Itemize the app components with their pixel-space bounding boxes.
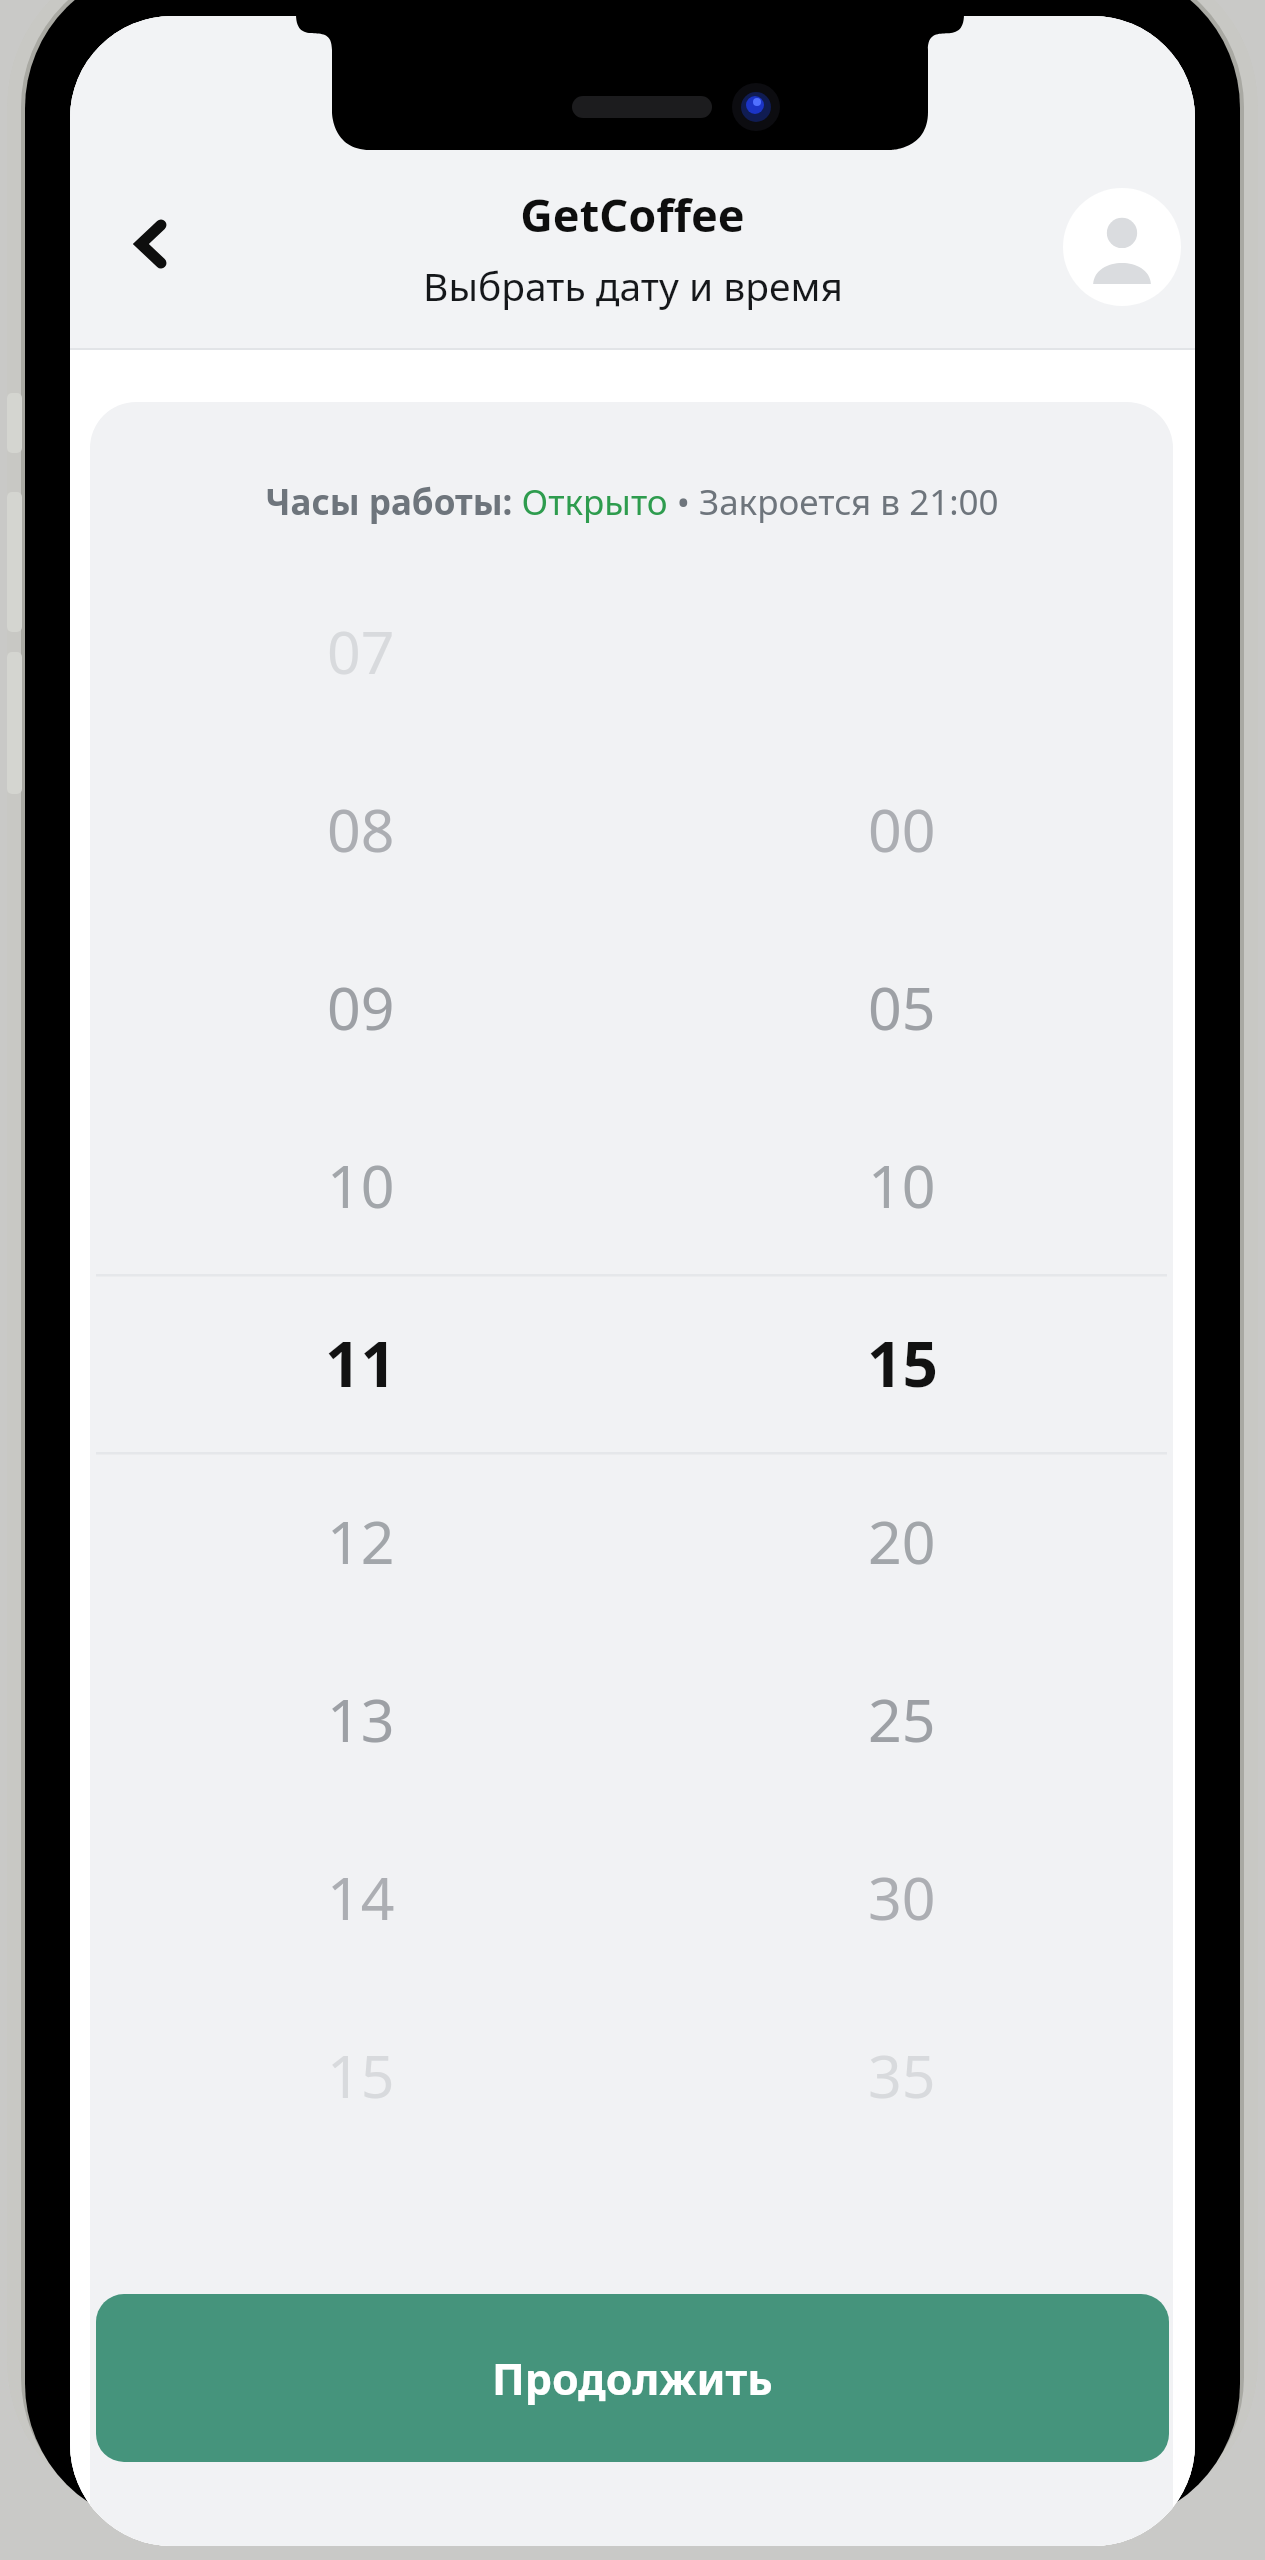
staticText: Выбрать дату и время [423, 259, 843, 312]
staticText: 07 [327, 611, 395, 691]
button[interactable]: Back [94, 186, 210, 302]
staticText: 05 [868, 967, 936, 1047]
staticText: 13 [327, 1679, 395, 1759]
staticText: GetCoffee [520, 184, 745, 245]
button[interactable]: 09 [90, 918, 1173, 1096]
staticText: 20 [868, 1501, 936, 1581]
button[interactable]: 13 [90, 1630, 1173, 1808]
staticText: 15 [867, 1321, 938, 1405]
staticText: 10 [868, 1145, 936, 1225]
staticText: 10 [327, 1145, 395, 1225]
button[interactable]: 10 [90, 1096, 1173, 1274]
staticText: 12 [327, 1501, 395, 1581]
button[interactable]: Profile [1063, 188, 1181, 306]
staticText: Часы работы: Открыто • Закроется в 21:00 [265, 478, 999, 526]
staticText: 15 [327, 2035, 395, 2115]
staticText: 30 [868, 1857, 936, 1937]
button[interactable]: 08 [90, 740, 1173, 918]
staticText: 25 [868, 1679, 936, 1759]
staticText: 08 [327, 789, 395, 869]
button[interactable]: 11 [90, 1274, 1173, 1452]
staticText: 35 [868, 2035, 936, 2115]
staticText: Продолжить [492, 2349, 773, 2408]
staticText: 00 [868, 789, 936, 869]
staticText: 11 [325, 1321, 396, 1405]
button[interactable]: 12 [90, 1452, 1173, 1630]
button[interactable]: Продолжить [96, 2294, 1169, 2462]
button[interactable]: 14 [90, 1808, 1173, 1986]
staticText: 09 [327, 967, 395, 1047]
staticText: 14 [327, 1857, 395, 1937]
